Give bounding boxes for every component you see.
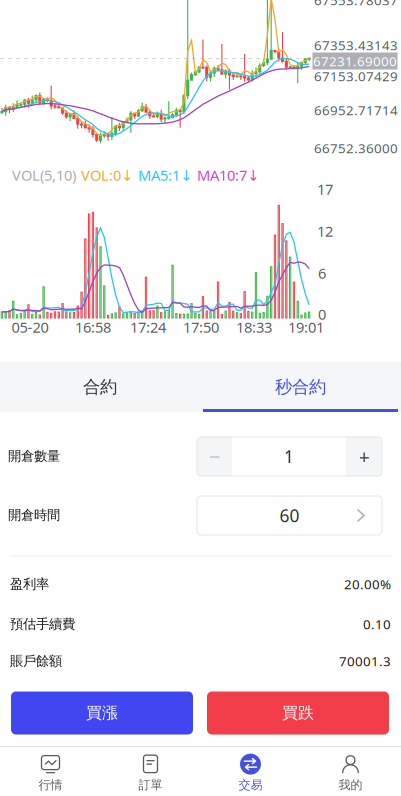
staticText: VOL(5,10)	[12, 165, 76, 185]
button[interactable]: 秒合約	[200, 362, 401, 412]
staticText: 0.10	[363, 615, 391, 633]
button[interactable]: Decrease quantity	[197, 437, 232, 476]
button[interactable]: Increase quantity	[346, 437, 382, 476]
staticText: 70001.3	[339, 652, 391, 670]
staticText: −	[209, 443, 220, 470]
staticText: 67553.78037	[314, 0, 398, 9]
button[interactable]: 60	[197, 496, 382, 535]
staticText: 交易	[238, 778, 262, 792]
staticText: 開倉時間	[8, 507, 60, 523]
staticText: 行情	[38, 778, 62, 792]
staticText: 19:01	[288, 317, 324, 337]
staticText: 66952.71714	[314, 101, 398, 119]
staticText: 買漲	[86, 703, 118, 723]
staticText: 18:33	[236, 317, 272, 337]
staticText: MA10:7↓	[197, 165, 259, 185]
staticText: 17:24	[130, 317, 166, 337]
staticText: 17	[317, 179, 333, 199]
staticText: 60	[279, 504, 299, 527]
staticText: VOL:0↓	[81, 165, 133, 185]
staticText: 盈利率	[10, 576, 49, 592]
staticText: 1	[284, 445, 294, 468]
staticText: 16:58	[75, 317, 111, 337]
staticText: 賬戶餘額	[10, 653, 62, 669]
staticText: MA5:1↓	[138, 165, 192, 185]
staticText: 預估手續費	[10, 616, 75, 632]
staticText: 0	[318, 304, 326, 324]
staticText: 我的	[338, 778, 362, 792]
staticText: 買跌	[282, 703, 314, 723]
staticText: 67353.43143	[314, 36, 398, 54]
staticText: 67153.07429	[314, 67, 398, 85]
staticText: 訂單	[138, 778, 162, 792]
button[interactable]: 訂單	[100, 747, 200, 796]
staticText: 67231.69000	[313, 52, 397, 70]
button[interactable]: 買跌	[207, 691, 389, 734]
button[interactable]: 我的	[300, 747, 400, 796]
button[interactable]: 行情	[0, 747, 100, 796]
staticText: 6	[318, 263, 326, 283]
staticText: 20.00%	[344, 575, 391, 593]
staticText: 05-20	[11, 317, 48, 337]
staticText: +	[358, 443, 369, 470]
staticText: 12	[317, 221, 333, 241]
staticText: 17:50	[183, 317, 219, 337]
button[interactable]: 買漲	[11, 691, 193, 734]
staticText: 秒合約	[275, 376, 326, 398]
staticText: 開倉數量	[8, 448, 60, 464]
staticText: 合約	[83, 376, 117, 398]
staticText: 66752.36000	[314, 139, 398, 157]
button[interactable]: 交易	[200, 747, 300, 796]
button[interactable]: 合約	[0, 362, 200, 412]
